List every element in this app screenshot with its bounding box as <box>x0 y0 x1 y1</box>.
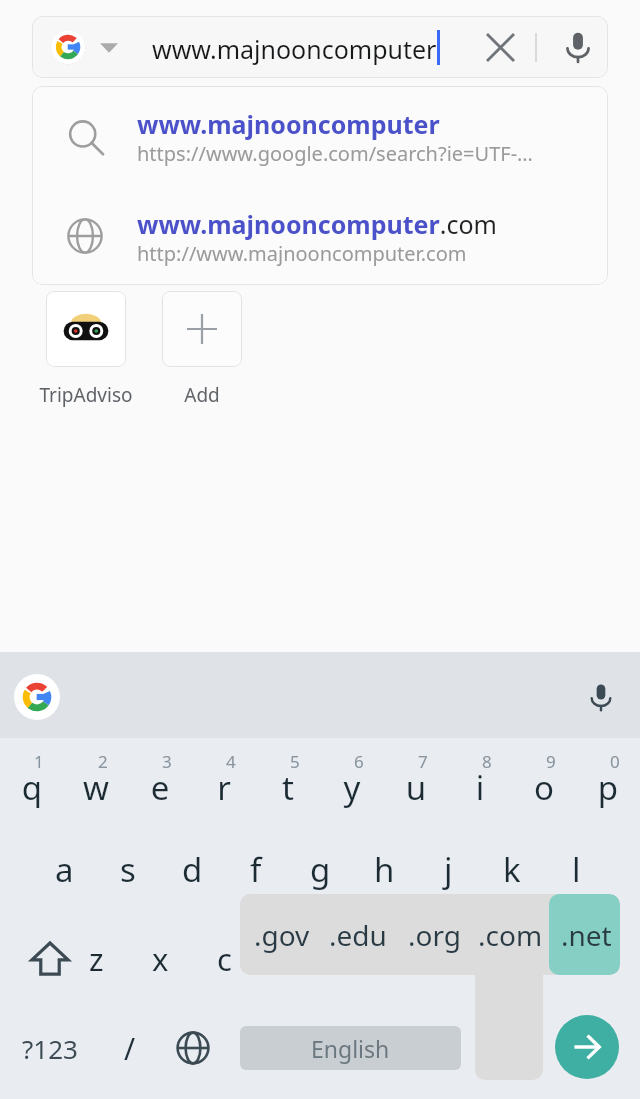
staticText: 9 <box>546 750 556 773</box>
button[interactable]: Google Assistant <box>14 674 60 720</box>
button[interactable]: b <box>320 928 384 990</box>
staticText: r <box>192 765 256 813</box>
staticText: c <box>217 938 232 980</box>
button[interactable] <box>46 291 126 367</box>
button[interactable]: 9 <box>512 745 576 830</box>
button[interactable]: h <box>352 838 416 900</box>
button[interactable]: s <box>96 838 160 900</box>
button[interactable]: .gov <box>244 894 320 975</box>
button[interactable]: 7 <box>384 745 448 830</box>
staticText: w <box>64 765 128 813</box>
staticText: g <box>310 847 331 892</box>
staticText: d <box>182 847 203 892</box>
staticText: t <box>256 765 320 813</box>
staticText: s <box>120 847 136 892</box>
staticText: 6 <box>354 750 364 773</box>
staticText: i <box>448 765 512 813</box>
staticText: Add <box>152 382 252 410</box>
staticText: www.majnooncomputer <box>152 32 437 66</box>
staticText: 2 <box>98 750 108 773</box>
staticText: www.majnooncomputer.com <box>137 207 497 241</box>
button[interactable]: m <box>448 928 512 990</box>
button[interactable]: www.majnooncomputer.com <box>32 186 608 284</box>
button[interactable]: z <box>64 928 128 990</box>
button[interactable]: English <box>240 1026 461 1070</box>
staticText: k <box>503 847 521 892</box>
button[interactable]: .org <box>396 894 472 975</box>
staticText: www.majnooncomputer <box>137 107 440 141</box>
button[interactable]: c <box>192 928 256 990</box>
staticText: 3 <box>162 750 172 773</box>
button[interactable]: .edu <box>320 894 396 975</box>
button[interactable]: 2 <box>64 745 128 830</box>
staticText: .edu <box>329 916 387 954</box>
button[interactable]: Voice input <box>578 674 624 720</box>
button[interactable]: Add shortcut <box>162 291 242 367</box>
button[interactable]: .com <box>472 894 548 975</box>
button[interactable]: 6 <box>320 745 384 830</box>
staticText: p <box>576 765 640 813</box>
button[interactable]: www.majnooncomputer <box>32 86 608 186</box>
staticText: u <box>384 765 448 813</box>
button[interactable]: k <box>480 838 544 900</box>
staticText: 0 <box>610 750 620 773</box>
staticText: 7 <box>418 750 428 773</box>
button[interactable]: l <box>544 838 608 900</box>
staticText: h <box>374 847 395 892</box>
button[interactable]: x <box>128 928 192 990</box>
button[interactable]: g <box>288 838 352 900</box>
staticText: v <box>280 938 296 980</box>
button[interactable]: Search options <box>32 16 608 78</box>
staticText: ?123 <box>22 1031 78 1066</box>
button[interactable]: Search options <box>94 34 124 60</box>
staticText: .net <box>561 916 612 954</box>
staticText: x <box>152 938 169 980</box>
staticText: y <box>320 765 384 813</box>
staticText: English <box>311 1033 390 1064</box>
button[interactable]: Shift <box>14 928 86 990</box>
button[interactable]: Voice search <box>548 16 608 78</box>
staticText: a <box>55 847 74 892</box>
button[interactable]: Backspace <box>554 928 626 990</box>
staticText: 1 <box>34 750 44 773</box>
staticText: 5 <box>290 750 300 773</box>
button[interactable]: .net <box>548 894 620 975</box>
button[interactable]: Go <box>555 1015 619 1079</box>
button[interactable]: Clear <box>469 16 531 78</box>
button[interactable]: 3 <box>128 745 192 830</box>
staticText: 4 <box>226 750 236 773</box>
button[interactable]: ?123 <box>8 1018 92 1078</box>
button[interactable]: 4 <box>192 745 256 830</box>
button[interactable]: f <box>224 838 288 900</box>
staticText: 8 <box>482 750 492 773</box>
staticText: z <box>89 938 104 980</box>
staticText: TripAdvisor <box>36 382 136 410</box>
staticText: n <box>406 938 426 980</box>
button[interactable]: a <box>32 838 96 900</box>
staticText: l <box>572 847 581 892</box>
button[interactable]: 5 <box>256 745 320 830</box>
staticText: / <box>124 1028 136 1069</box>
button[interactable]: 0 <box>576 745 640 830</box>
button[interactable]: d <box>160 838 224 900</box>
staticText: e <box>128 765 192 813</box>
staticText: m <box>466 938 495 980</box>
staticText: j <box>444 847 453 892</box>
button[interactable]: j <box>416 838 480 900</box>
staticText: o <box>512 765 576 813</box>
staticText: f <box>250 847 262 892</box>
button[interactable]: / <box>100 1018 160 1078</box>
staticText: .gov <box>254 916 310 954</box>
staticText: https://www.google.com/search?ie=UTF-… <box>137 140 533 167</box>
button[interactable]: n <box>384 928 448 990</box>
staticText: http://www.majnooncomputer.com <box>137 240 467 267</box>
staticText: b <box>342 938 362 980</box>
button[interactable]: v <box>256 928 320 990</box>
staticText: .com <box>478 916 543 954</box>
button[interactable]: 8 <box>448 745 512 830</box>
staticText: .org <box>408 916 461 954</box>
button[interactable]: Change language <box>162 1018 224 1078</box>
button[interactable]: 1 <box>0 745 64 830</box>
staticText: q <box>0 765 64 813</box>
